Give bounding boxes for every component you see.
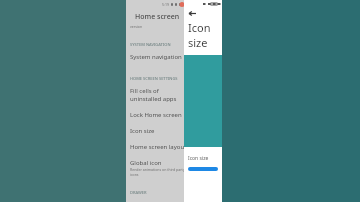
staticText: DRAWER xyxy=(130,190,147,195)
staticText: Fill cells of uninstalled apps xyxy=(130,87,187,103)
staticText: Home screen xyxy=(135,12,180,22)
staticText: 5:19 xyxy=(162,2,171,7)
staticText: HOME SCREEN SETTINGS xyxy=(130,76,178,81)
staticText: Home screen layout xyxy=(130,143,187,151)
staticText: Lock Home screen layout xyxy=(130,111,187,119)
button[interactable]: System navigation xyxy=(126,49,188,65)
button[interactable]: Fill cells of uninstalled apps xyxy=(126,83,188,107)
staticText: System navigation xyxy=(130,53,182,61)
staticText: SYSTEM NAVIGATION xyxy=(130,42,171,47)
button[interactable]: Home screen layout xyxy=(126,139,188,155)
staticText: Icon size xyxy=(130,127,155,135)
staticText: Icon size xyxy=(188,20,222,50)
button[interactable]: Back xyxy=(187,8,198,19)
staticText: Icon size xyxy=(188,155,209,162)
staticText: Global icon animations xyxy=(130,159,187,167)
button[interactable]: Icon size xyxy=(126,123,188,139)
button[interactable]: Home screen xyxy=(126,9,188,24)
button[interactable]: Lock Home screen layout xyxy=(126,107,188,123)
staticText: version xyxy=(130,24,143,29)
button[interactable]: Arrange items in Recents xyxy=(126,197,188,202)
button[interactable]: Icon size slider xyxy=(188,166,218,171)
button[interactable]: Global icon animations xyxy=(126,155,188,181)
staticText: Render animations on third party icons xyxy=(130,167,187,177)
